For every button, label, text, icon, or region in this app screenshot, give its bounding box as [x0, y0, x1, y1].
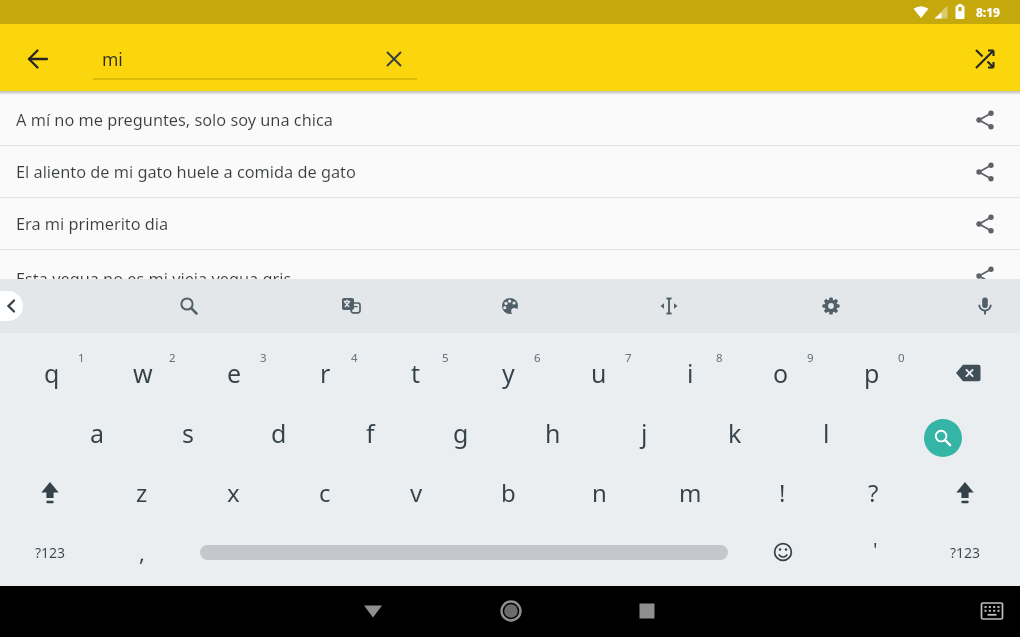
button[interactable] — [351, 589, 395, 633]
staticText: 9 — [807, 350, 814, 366]
staticText: 7 — [625, 350, 632, 366]
staticText: w — [133, 356, 153, 390]
button[interactable]: i — [630, 353, 750, 393]
button[interactable]: El aliento de mi gato huele a comida de … — [0, 146, 1020, 198]
button[interactable] — [811, 286, 851, 326]
staticText: p — [864, 356, 880, 390]
button[interactable]: Era mi primerito dia — [0, 198, 1020, 250]
button[interactable]: mi — [93, 39, 383, 79]
button[interactable] — [946, 351, 990, 395]
staticText: g — [453, 416, 469, 450]
button[interactable]: f — [310, 413, 430, 453]
button[interactable] — [970, 589, 1014, 633]
staticText: c — [319, 476, 331, 509]
staticText: b — [501, 476, 516, 509]
staticText: 6 — [534, 350, 541, 366]
button[interactable]: w — [83, 353, 203, 393]
button[interactable] — [374, 39, 414, 79]
staticText: u — [591, 356, 607, 390]
button[interactable] — [18, 39, 58, 79]
button[interactable]: k — [675, 413, 795, 453]
button[interactable] — [490, 286, 530, 326]
staticText: , — [139, 537, 145, 567]
staticText: d — [271, 416, 287, 450]
staticText: 5 — [442, 350, 449, 366]
button[interactable] — [649, 286, 689, 326]
button[interactable]: c — [265, 472, 385, 512]
staticText: mi — [102, 47, 123, 71]
staticText: m — [679, 476, 702, 509]
staticText: 2 — [169, 350, 176, 366]
button[interactable] — [965, 39, 1005, 79]
button[interactable]: a — [37, 413, 157, 453]
button[interactable]: q — [0, 353, 112, 393]
button[interactable]: n — [539, 472, 659, 512]
button[interactable] — [943, 470, 987, 514]
button[interactable]: o — [721, 353, 841, 393]
button[interactable] — [924, 419, 962, 457]
staticText: v — [410, 476, 423, 509]
button[interactable]: d — [219, 413, 339, 453]
staticText: k — [728, 416, 742, 450]
staticText: z — [136, 476, 148, 509]
button[interactable]: p — [812, 353, 932, 393]
button[interactable]: A mí no me preguntes, solo soy una chica — [0, 94, 1020, 146]
button[interactable] — [489, 589, 533, 633]
button[interactable]: r — [265, 353, 385, 393]
button[interactable]: u — [539, 353, 659, 393]
button[interactable] — [763, 532, 803, 572]
staticText: ? — [868, 476, 879, 509]
staticText: o — [773, 356, 789, 390]
button[interactable] — [331, 286, 371, 326]
button[interactable] — [965, 286, 1005, 326]
button[interactable] — [169, 286, 209, 326]
button[interactable] — [0, 291, 23, 321]
staticText: t — [411, 356, 421, 390]
button[interactable]: ?123 — [0, 532, 110, 572]
staticText: f — [366, 416, 375, 450]
button[interactable]: h — [493, 413, 613, 453]
button[interactable]: t — [356, 353, 476, 393]
staticText: ' — [873, 536, 878, 563]
staticText: ! — [779, 476, 786, 509]
button[interactable]: s — [128, 413, 248, 453]
button[interactable]: x — [173, 472, 293, 512]
staticText: ?123 — [35, 543, 66, 562]
button[interactable] — [0, 294, 23, 318]
staticText: y — [502, 356, 515, 390]
button[interactable]: y — [448, 353, 568, 393]
staticText: El aliento de mi gato huele a comida de … — [16, 161, 356, 183]
staticText: 4 — [351, 350, 358, 366]
button[interactable] — [625, 589, 669, 633]
staticText: i — [687, 356, 694, 390]
button[interactable]: ' — [815, 529, 935, 569]
button[interactable]: l — [766, 413, 886, 453]
staticText: x — [227, 476, 240, 509]
staticText: 8:19 — [976, 4, 1000, 20]
staticText: 3 — [260, 350, 267, 366]
staticText: l — [823, 416, 830, 450]
button[interactable]: v — [356, 472, 476, 512]
staticText: A mí no me preguntes, solo soy una chica — [16, 109, 333, 131]
button[interactable]: m — [630, 472, 750, 512]
button[interactable]: b — [448, 472, 568, 512]
button[interactable]: , — [82, 532, 202, 572]
button[interactable]: e — [174, 353, 294, 393]
staticText: 0 — [898, 350, 905, 366]
button[interactable]: ! — [722, 472, 842, 512]
button[interactable]: g — [401, 413, 521, 453]
staticText: a — [90, 416, 105, 450]
staticText: e — [227, 356, 242, 390]
button[interactable]: Esta yegua no es mi vieja yegua gris — [0, 250, 1020, 279]
staticText: n — [592, 476, 607, 509]
button[interactable] — [28, 470, 72, 514]
button[interactable]: ? — [813, 472, 933, 512]
button[interactable]: j — [584, 413, 704, 453]
staticText: Esta yegua no es mi vieja yegua gris — [16, 268, 292, 279]
button[interactable]: z — [82, 472, 202, 512]
staticText: 8 — [716, 350, 723, 366]
staticText: h — [545, 416, 561, 450]
staticText: r — [320, 356, 331, 390]
button[interactable]: ?123 — [905, 532, 1020, 572]
